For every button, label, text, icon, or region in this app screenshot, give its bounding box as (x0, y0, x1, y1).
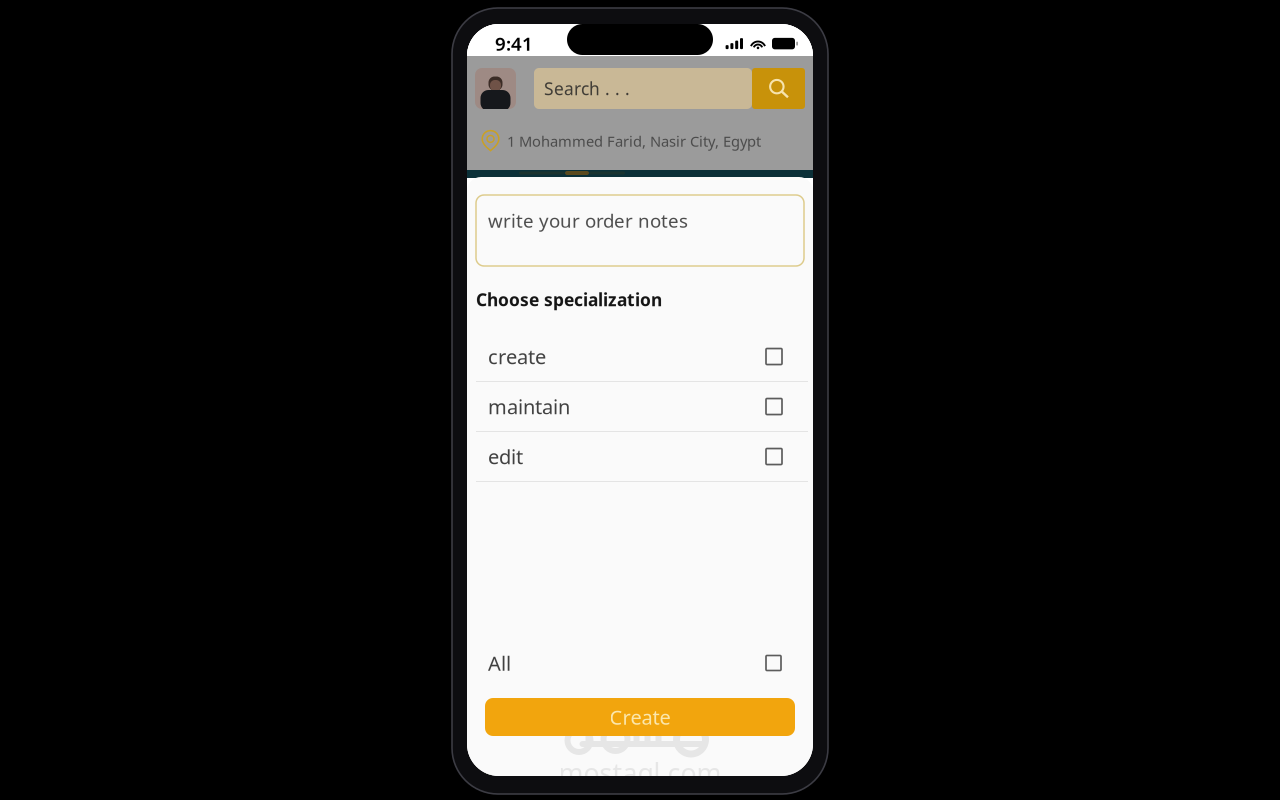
button[interactable]: Profile (475, 68, 516, 109)
button[interactable]: All (467, 644, 813, 682)
staticText: mostaql.com (558, 755, 721, 790)
staticText: write your order notes (488, 208, 688, 233)
button[interactable]: Search (752, 68, 805, 109)
button[interactable]: create (467, 332, 813, 382)
staticText: create (488, 343, 546, 370)
staticText: maintain (488, 393, 570, 420)
staticText: Search . . . (544, 77, 630, 100)
staticText: All (488, 650, 511, 676)
button[interactable]: maintain (467, 382, 813, 432)
staticText: edit (488, 443, 523, 470)
staticText: Choose specialization (476, 288, 662, 311)
staticText: Create (609, 704, 670, 730)
staticText: 1 Mohammed Farid, Nasir City, Egypt (507, 131, 761, 151)
button[interactable]: edit (467, 432, 813, 482)
staticText: 9:41 (495, 31, 533, 56)
button[interactable]: Create (485, 698, 795, 736)
